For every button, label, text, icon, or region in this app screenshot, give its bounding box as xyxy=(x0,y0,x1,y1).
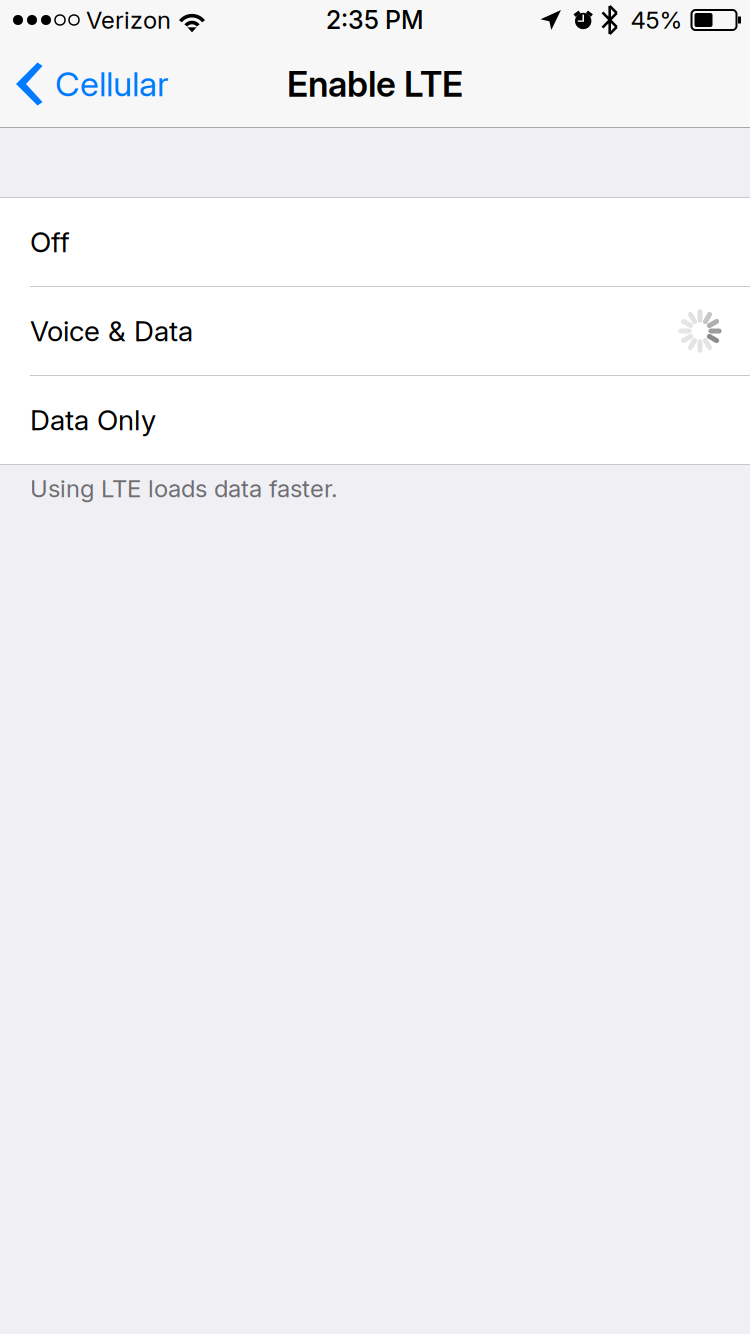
staticText: Cellular xyxy=(55,63,169,104)
button[interactable]: Off xyxy=(0,198,750,286)
button[interactable]: Back to Cellular xyxy=(0,40,181,128)
staticText: Using LTE loads data faster. xyxy=(30,474,338,503)
button[interactable]: Voice & Data xyxy=(0,287,750,375)
staticText: Verizon xyxy=(86,5,171,34)
staticText: Data Only xyxy=(30,403,156,437)
staticText: 2:35 PM xyxy=(326,5,424,35)
staticText: Enable LTE xyxy=(287,63,463,105)
button[interactable]: Data Only xyxy=(0,376,750,464)
staticText: 45% xyxy=(630,5,682,34)
staticText: Off xyxy=(30,225,70,259)
staticText: Voice & Data xyxy=(30,314,193,348)
